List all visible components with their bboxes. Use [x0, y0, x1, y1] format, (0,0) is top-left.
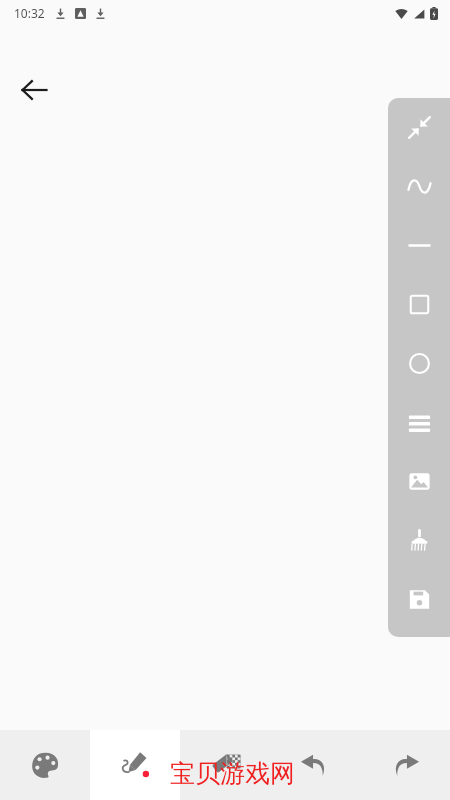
- button[interactable]: Undo: [270, 730, 360, 800]
- button[interactable]: Palette: [0, 730, 90, 800]
- staticText: 10:32: [14, 5, 45, 21]
- button[interactable]: Line: [388, 216, 450, 275]
- staticText: 宝贝游戏网: [170, 758, 295, 789]
- button[interactable]: Circle: [388, 334, 450, 393]
- button[interactable]: Image: [388, 452, 450, 511]
- button[interactable]: Collapse: [388, 98, 450, 157]
- button[interactable]: Eraser: [180, 730, 270, 800]
- button[interactable]: Back: [8, 64, 60, 116]
- button[interactable]: Redo: [360, 730, 450, 800]
- button[interactable]: Rectangle: [388, 275, 450, 334]
- button[interactable]: Curve: [388, 157, 450, 216]
- button[interactable]: Brush: [90, 730, 180, 800]
- button[interactable]: Layers: [388, 393, 450, 452]
- button[interactable]: Save: [388, 570, 450, 629]
- button[interactable]: Clear: [388, 511, 450, 570]
